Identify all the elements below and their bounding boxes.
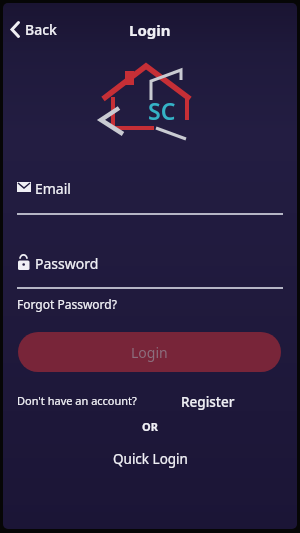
button[interactable]: Quick Login [113, 450, 188, 468]
button[interactable]: Register [181, 393, 235, 411]
staticText: Email [35, 179, 71, 198]
button[interactable]: Login [18, 332, 281, 372]
button[interactable]: Back [8, 18, 59, 41]
staticText: Password [35, 254, 99, 273]
staticText: Don't have an account? [17, 393, 137, 408]
button[interactable]: Forgot Password? [17, 296, 117, 312]
staticText: SC [148, 95, 176, 126]
staticText: Back [25, 20, 57, 39]
staticText: Login [131, 343, 168, 362]
staticText: Login [129, 20, 171, 40]
staticText: OR [142, 419, 158, 434]
